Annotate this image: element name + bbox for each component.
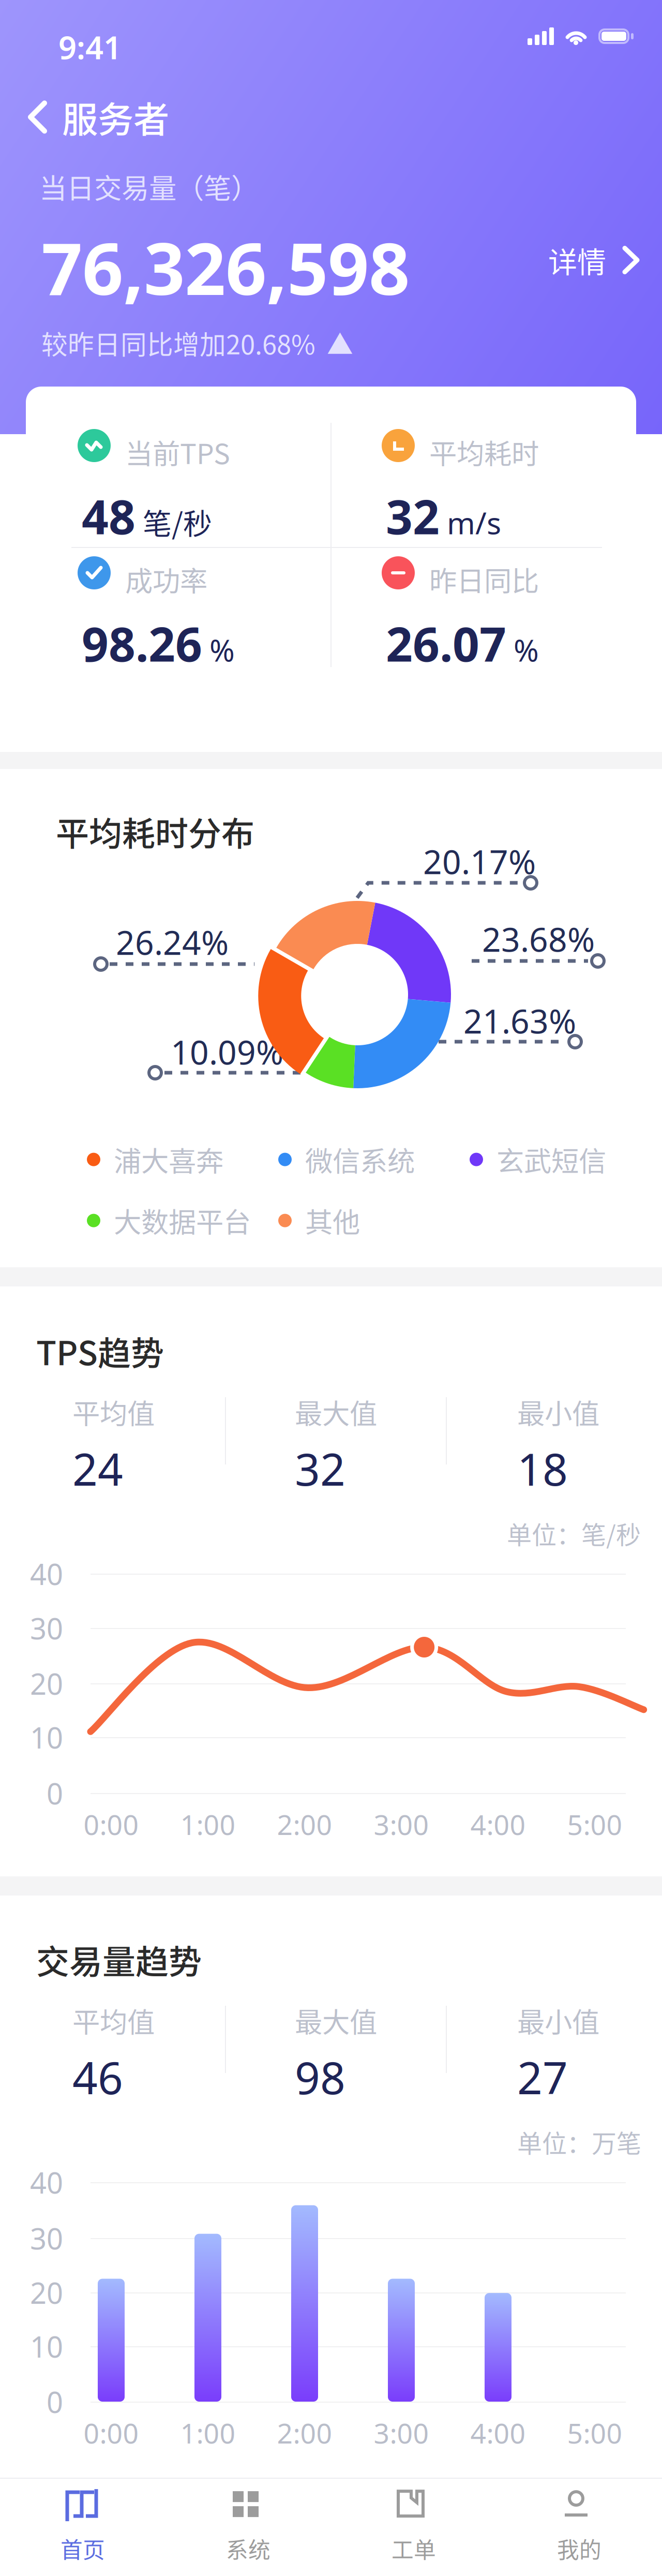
button[interactable]: 系统 [165, 2489, 331, 2565]
staticText: 98 [295, 2048, 345, 2106]
staticText: 最小值 [517, 1392, 599, 1432]
staticText: 笔/秒 [143, 501, 212, 543]
staticText: 23.68% [482, 917, 595, 961]
staticText: 最大值 [295, 1392, 377, 1432]
staticText: 平均耗时分布 [56, 807, 254, 855]
staticText: m/s [447, 502, 501, 543]
staticText: 4:00 [470, 2415, 526, 2451]
staticText: 9:41 [58, 26, 122, 68]
staticText: 10 [30, 1718, 63, 1757]
staticText: 其他 [305, 1201, 360, 1240]
staticText: 3:00 [374, 1806, 429, 1843]
staticText: 48 [82, 485, 136, 547]
staticText: 2:00 [277, 1806, 332, 1843]
staticText: 浦大喜奔 [114, 1139, 223, 1179]
staticText: 系统 [226, 2533, 270, 2565]
staticText: 10 [30, 2327, 63, 2366]
staticText: 26.24% [116, 920, 229, 964]
staticText: 21.63% [463, 999, 576, 1043]
staticText: 成功率 [125, 559, 207, 599]
staticText: TPS趋势 [36, 1327, 164, 1375]
staticText: 平均值 [72, 2001, 155, 2041]
staticText: 32 [295, 1439, 345, 1498]
staticText: 4:00 [470, 1806, 526, 1843]
staticText: 46 [72, 2048, 123, 2106]
staticText: 首页 [61, 2533, 105, 2565]
staticText: 工单 [392, 2533, 436, 2565]
staticText: 27 [517, 2048, 568, 2106]
staticText: 76,326,598 [41, 219, 410, 315]
staticText: 0:00 [84, 1806, 139, 1843]
staticText: 平均耗时 [429, 432, 539, 472]
staticText: 10.09% [171, 1030, 283, 1074]
staticText: 20.17% [423, 839, 536, 883]
staticText: 98.26 [82, 612, 202, 674]
staticText: % [514, 630, 539, 670]
staticText: 平均值 [72, 1392, 155, 1432]
staticText: 微信系统 [305, 1139, 415, 1179]
button[interactable]: 我的 [496, 2489, 662, 2565]
staticText: 单位：笔/秒 [507, 1515, 641, 1551]
staticText: 40 [30, 1555, 63, 1593]
staticText: 玄武短信 [496, 1139, 606, 1179]
staticText: 5:00 [567, 1806, 622, 1843]
staticText: 较昨日同比增加20.68% ▲ [41, 324, 353, 362]
staticText: 26.07 [386, 612, 506, 674]
staticText: 大数据平台 [114, 1201, 251, 1240]
staticText: 30 [30, 2219, 63, 2257]
staticText: 32 [386, 485, 440, 547]
button[interactable]: 服务者 [27, 91, 169, 143]
staticText: 昨日同比 [429, 559, 539, 599]
staticText: 0 [47, 2382, 63, 2421]
staticText: 40 [30, 2163, 63, 2202]
staticText: 最大值 [295, 2001, 377, 2041]
staticText: 最小值 [517, 2001, 599, 2041]
button[interactable]: 工单 [331, 2489, 496, 2565]
staticText: 我的 [557, 2533, 601, 2565]
staticText: 2:00 [277, 2415, 332, 2451]
button[interactable]: 首页 [0, 2489, 165, 2565]
staticText: 20 [30, 2273, 63, 2312]
staticText: 当前TPS [125, 432, 230, 472]
staticText: 18 [517, 1439, 568, 1498]
staticText: 5:00 [567, 2415, 622, 2451]
staticText: 1:00 [180, 2415, 236, 2451]
staticText: 交易量趋势 [36, 1935, 202, 1983]
staticText: 24 [72, 1439, 123, 1498]
staticText: 服务者 [62, 91, 169, 143]
staticText: 20 [30, 1664, 63, 1703]
button[interactable]: 详情 [548, 239, 640, 281]
staticText: 0 [47, 1774, 63, 1812]
staticText: 1:00 [180, 1806, 236, 1843]
staticText: 当日交易量（笔） [39, 167, 259, 207]
staticText: 0:00 [84, 2415, 139, 2451]
staticText: % [209, 630, 235, 670]
staticText: 30 [30, 1609, 63, 1647]
staticText: 详情 [548, 239, 606, 281]
staticText: 3:00 [374, 2415, 429, 2451]
staticText: 单位：万笔 [517, 2124, 641, 2160]
